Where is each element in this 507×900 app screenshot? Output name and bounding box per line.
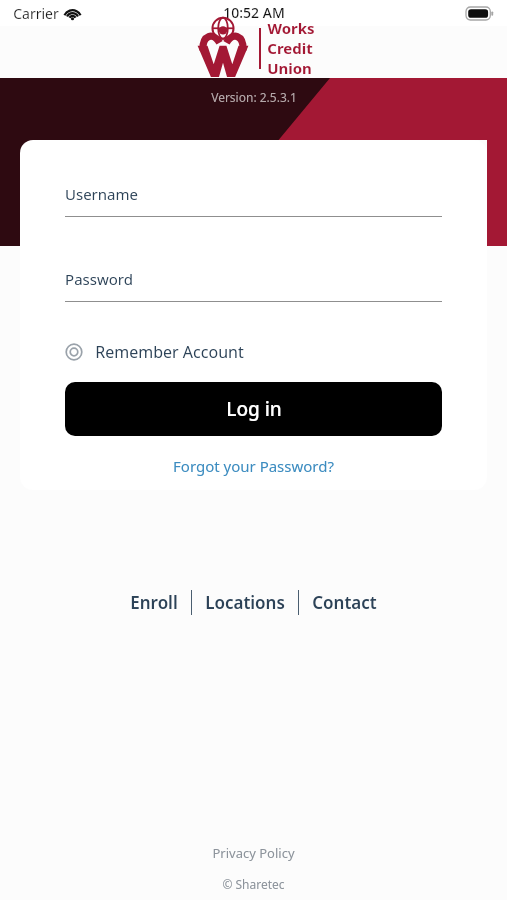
staticText: Remember Account [95, 341, 244, 363]
staticText: Log in [226, 396, 282, 422]
staticText: Carrier [13, 4, 59, 23]
button[interactable]: Enroll [117, 586, 191, 619]
staticText: Version: 2.5.3.1 [211, 89, 297, 105]
staticText: Locations [205, 591, 285, 614]
staticText: Union [267, 58, 312, 78]
button[interactable]: Privacy Policy [212, 844, 295, 862]
staticText: Privacy Policy [212, 844, 295, 862]
staticText: Forgot your Password? [173, 456, 334, 476]
other: Wi-Fi signal [64, 7, 81, 20]
staticText: Enroll [130, 591, 178, 614]
staticText: Credit [267, 38, 313, 58]
other: Battery full [466, 7, 493, 20]
button[interactable]: Locations [192, 586, 298, 619]
staticText: 10:52 AM [223, 3, 285, 22]
staticText: Contact [312, 591, 377, 614]
staticText: © Sharetec [222, 876, 285, 892]
button[interactable]: Username [65, 184, 442, 217]
button[interactable]: Contact [299, 586, 390, 619]
button[interactable]: Password [65, 269, 442, 302]
button[interactable]: Log in [65, 382, 442, 436]
staticText: Password [65, 269, 133, 289]
button[interactable]: Forgot your Password? [65, 452, 442, 480]
button[interactable]: Remember Account [65, 341, 244, 363]
staticText: Works [267, 18, 315, 38]
staticText: Username [65, 184, 138, 204]
